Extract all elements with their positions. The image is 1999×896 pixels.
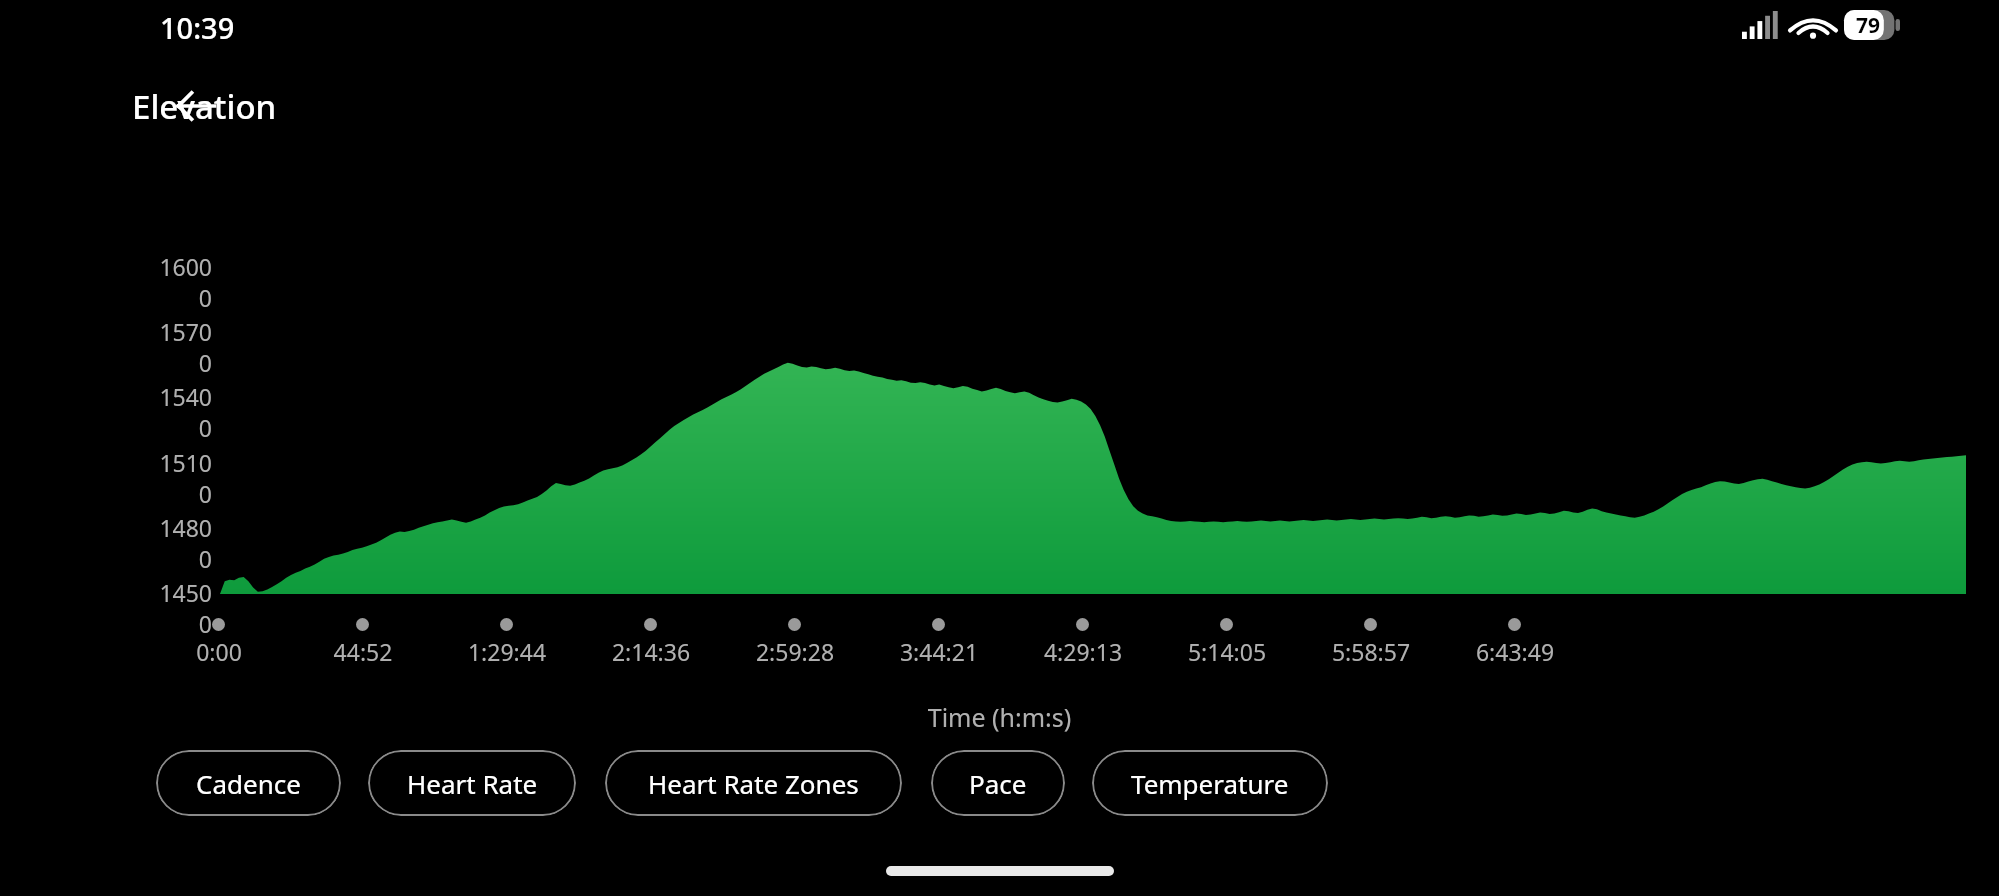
staticText: 4:29:13 bbox=[1003, 636, 1163, 667]
staticText: 79 bbox=[1856, 11, 1881, 40]
staticText: 2:14:36 bbox=[571, 636, 731, 667]
staticText: 0:00 bbox=[139, 636, 299, 667]
staticText: 5:14:05 bbox=[1147, 636, 1307, 667]
staticText: Pace bbox=[969, 766, 1027, 801]
staticText: 15100 bbox=[150, 447, 212, 509]
staticText: 14800 bbox=[150, 512, 212, 574]
button[interactable]: Temperature bbox=[1092, 750, 1328, 816]
staticText: 16000 bbox=[150, 251, 212, 313]
staticText: 10:39 bbox=[160, 8, 235, 47]
button[interactable]: Back bbox=[160, 70, 232, 142]
button[interactable]: Heart Rate Zones bbox=[605, 750, 902, 816]
staticText: Cadence bbox=[196, 766, 301, 801]
staticText: Temperature bbox=[1131, 766, 1289, 801]
staticText: Heart Rate bbox=[407, 766, 538, 801]
staticText: 44:52 bbox=[283, 636, 443, 667]
staticText: Time (h:m:s) bbox=[0, 700, 1999, 734]
button[interactable]: Heart Rate bbox=[368, 750, 576, 816]
staticText: 3:44:21 bbox=[859, 636, 1019, 667]
staticText: 15400 bbox=[150, 381, 212, 443]
button[interactable]: Pace bbox=[931, 750, 1065, 816]
staticText: 15700 bbox=[150, 316, 212, 378]
staticText: Heart Rate Zones bbox=[648, 766, 859, 801]
staticText: 2:59:28 bbox=[715, 636, 875, 667]
staticText: 1:29:44 bbox=[427, 636, 587, 667]
staticText: 5:58:57 bbox=[1291, 636, 1451, 667]
staticText: Elevation bbox=[132, 84, 277, 129]
button[interactable]: Cadence bbox=[156, 750, 341, 816]
staticText: 6:43:49 bbox=[1435, 636, 1595, 667]
staticText: 14500 bbox=[150, 577, 212, 639]
